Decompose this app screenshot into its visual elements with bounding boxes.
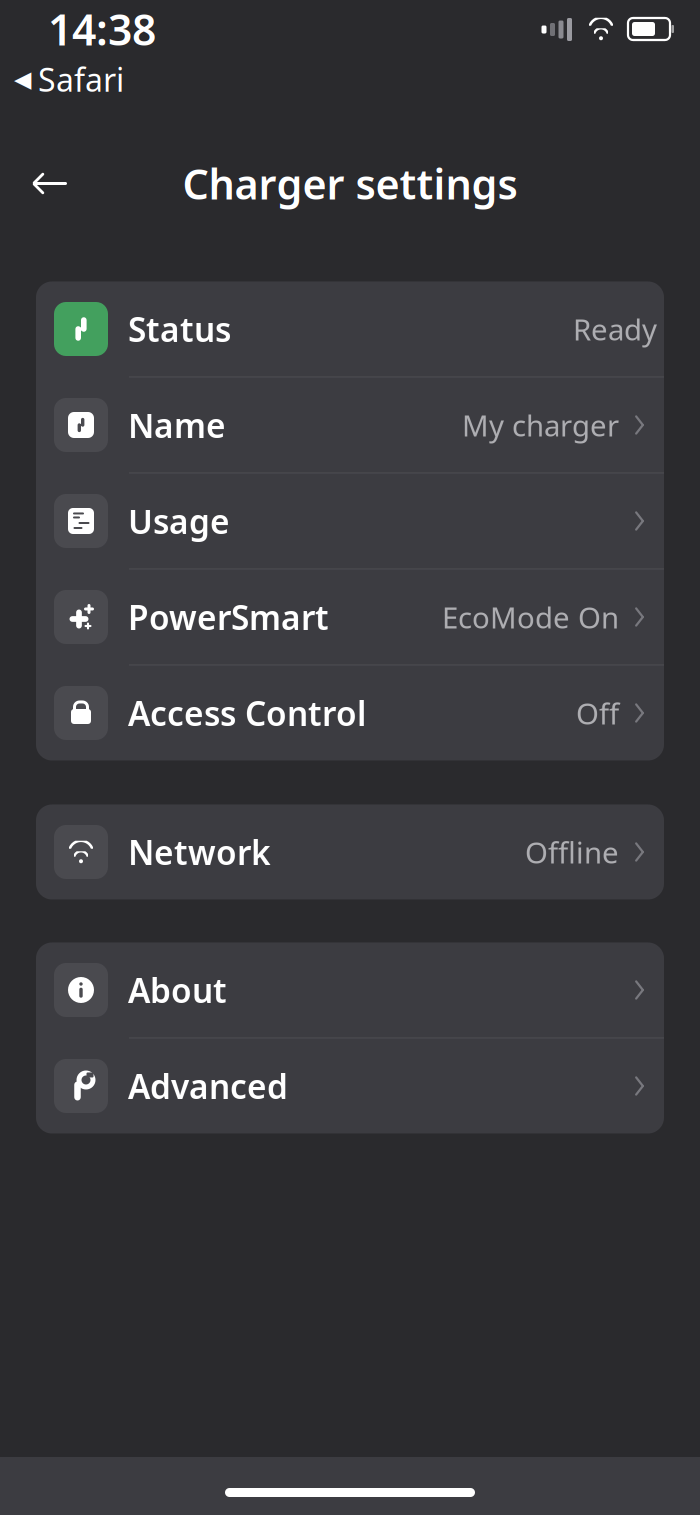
- button[interactable]: Network: [36, 804, 664, 899]
- staticText: Ready: [573, 309, 657, 348]
- button[interactable]: Status: [36, 281, 664, 377]
- staticText: About: [128, 968, 227, 1012]
- staticText: PowerSmart: [128, 595, 329, 639]
- staticText: Access Control: [128, 691, 366, 735]
- staticText: 14:38: [48, 1, 156, 57]
- staticText: Status: [128, 307, 231, 351]
- staticText: Network: [128, 830, 271, 874]
- staticText: My charger: [462, 405, 619, 444]
- button[interactable]: PowerSmart: [36, 569, 664, 665]
- staticText: Advanced: [128, 1064, 288, 1108]
- staticText: Name: [128, 403, 226, 447]
- staticText: Offline: [525, 832, 619, 871]
- staticText: Usage: [128, 499, 230, 543]
- button[interactable]: Back: [18, 155, 82, 211]
- button[interactable]: About: [36, 942, 664, 1038]
- button[interactable]: Usage: [36, 473, 664, 569]
- staticText: ◀: [14, 66, 31, 92]
- button[interactable]: Name: [36, 377, 664, 473]
- staticText: EcoMode On: [442, 597, 619, 636]
- button[interactable]: Advanced: [36, 1038, 664, 1133]
- staticText: Charger settings: [182, 156, 517, 211]
- staticText: Safari: [38, 58, 124, 100]
- button[interactable]: Access Control: [36, 665, 664, 760]
- staticText: Off: [576, 693, 619, 732]
